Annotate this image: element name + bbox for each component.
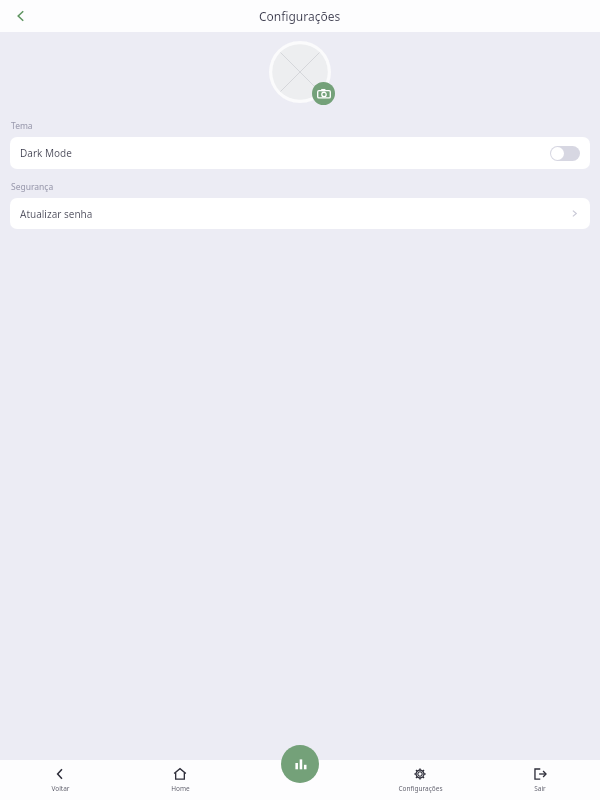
button[interactable]: Home [120,763,240,797]
button[interactable]: Dark Mode [10,137,590,169]
staticText: Configurações [259,8,341,24]
staticText: Voltar [51,784,70,793]
staticText: Dark Mode [20,146,72,160]
staticText: Configurações [398,784,443,793]
button[interactable]: Voltar [8,3,34,29]
staticText: Home [171,784,190,793]
button[interactable]: Dark Mode desligado [550,146,580,161]
button[interactable]: Voltar [0,763,120,797]
staticText: Sair [534,784,546,793]
button[interactable]: Sair [480,763,600,797]
button[interactable]: Atualizar senha [10,198,590,229]
staticText: Atualizar senha [20,207,93,221]
staticText: Segurança [11,181,54,193]
button[interactable]: Configurações [360,763,480,797]
button[interactable]: Alterar foto de perfil [269,41,331,103]
button[interactable]: Relatórios [281,745,319,783]
staticText: Tema [11,120,33,132]
